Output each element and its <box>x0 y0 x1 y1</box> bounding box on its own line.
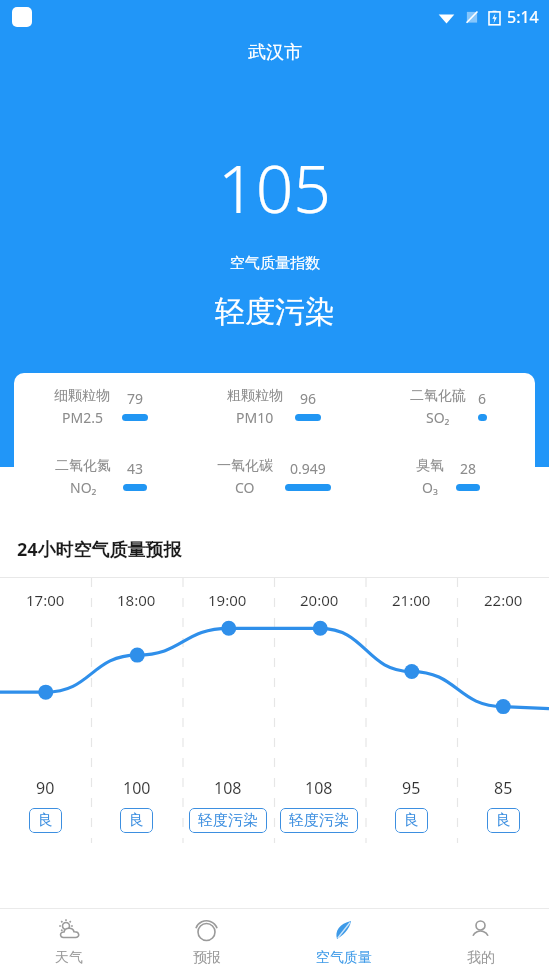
staticText: 96 <box>300 389 317 408</box>
staticText: NO₂ <box>70 478 97 497</box>
button[interactable]: 良 <box>120 808 153 833</box>
staticText: 90 <box>36 777 55 799</box>
staticText: 细颗粒物 <box>54 387 110 405</box>
button[interactable]: 一氧化碳 <box>187 457 361 497</box>
staticText: 18:00 <box>117 590 156 610</box>
button[interactable]: 良 <box>395 808 428 833</box>
staticText: PM10 <box>236 408 274 427</box>
staticText: 28 <box>460 459 477 478</box>
staticText: 79 <box>127 389 144 408</box>
staticText: 二氧化氮 <box>55 457 111 475</box>
button[interactable]: 二氧化氮 <box>14 457 187 497</box>
staticText: 臭氧 <box>416 457 444 475</box>
button[interactable]: 预报 <box>138 909 275 976</box>
button[interactable]: 轻度污染 <box>280 808 358 833</box>
staticText: 轻度污染 <box>198 811 258 830</box>
staticText: 22:00 <box>484 590 523 610</box>
staticText: 空气质量指数 <box>230 254 320 273</box>
staticText: 轻度污染 <box>215 293 335 331</box>
staticText: 空气质量 <box>316 949 372 967</box>
staticText: 108 <box>305 777 333 799</box>
staticText: 100 <box>123 777 151 799</box>
staticText: 6 <box>478 389 487 408</box>
staticText: CO <box>235 478 255 497</box>
button[interactable]: 空气质量 <box>275 909 412 976</box>
staticText: 5:14 <box>507 6 539 28</box>
staticText: 17:00 <box>26 590 65 610</box>
staticText: PM2.5 <box>62 408 103 427</box>
staticText: 粗颗粒物 <box>227 387 283 405</box>
staticText: O₃ <box>422 478 438 497</box>
button[interactable]: 细颗粒物 <box>14 387 187 427</box>
staticText: 天气 <box>55 949 83 967</box>
button[interactable]: 良 <box>487 808 520 833</box>
button[interactable]: 我的 <box>412 909 549 976</box>
staticText: 良 <box>496 811 511 830</box>
button[interactable]: 二氧化硫 <box>361 387 535 427</box>
staticText: 24小时空气质量预报 <box>17 537 182 562</box>
staticText: 85 <box>494 777 513 799</box>
staticText: 二氧化硫 <box>410 387 466 405</box>
staticText: SO₂ <box>426 408 450 427</box>
staticText: 105 <box>218 142 332 232</box>
staticText: 108 <box>214 777 242 799</box>
staticText: 95 <box>402 777 421 799</box>
button[interactable]: 粗颗粒物 <box>187 387 361 427</box>
button[interactable]: 细颗粒物 <box>14 373 535 511</box>
button[interactable]: 良 <box>29 808 62 833</box>
staticText: 良 <box>38 811 53 830</box>
staticText: 0.949 <box>290 459 326 478</box>
button[interactable]: 臭氧 <box>361 457 535 497</box>
staticText: 良 <box>404 811 419 830</box>
staticText: 21:00 <box>392 590 431 610</box>
staticText: 43 <box>127 459 144 478</box>
staticText: 我的 <box>467 949 495 967</box>
staticText: 良 <box>129 811 144 830</box>
button[interactable]: 轻度污染 <box>189 808 267 833</box>
staticText: 轻度污染 <box>289 811 349 830</box>
staticText: 20:00 <box>300 590 339 610</box>
staticText: 武汉市 <box>248 41 302 64</box>
staticText: 19:00 <box>208 590 247 610</box>
button[interactable]: 天气 <box>0 909 138 976</box>
staticText: 预报 <box>193 949 221 967</box>
staticText: 一氧化碳 <box>217 457 273 475</box>
